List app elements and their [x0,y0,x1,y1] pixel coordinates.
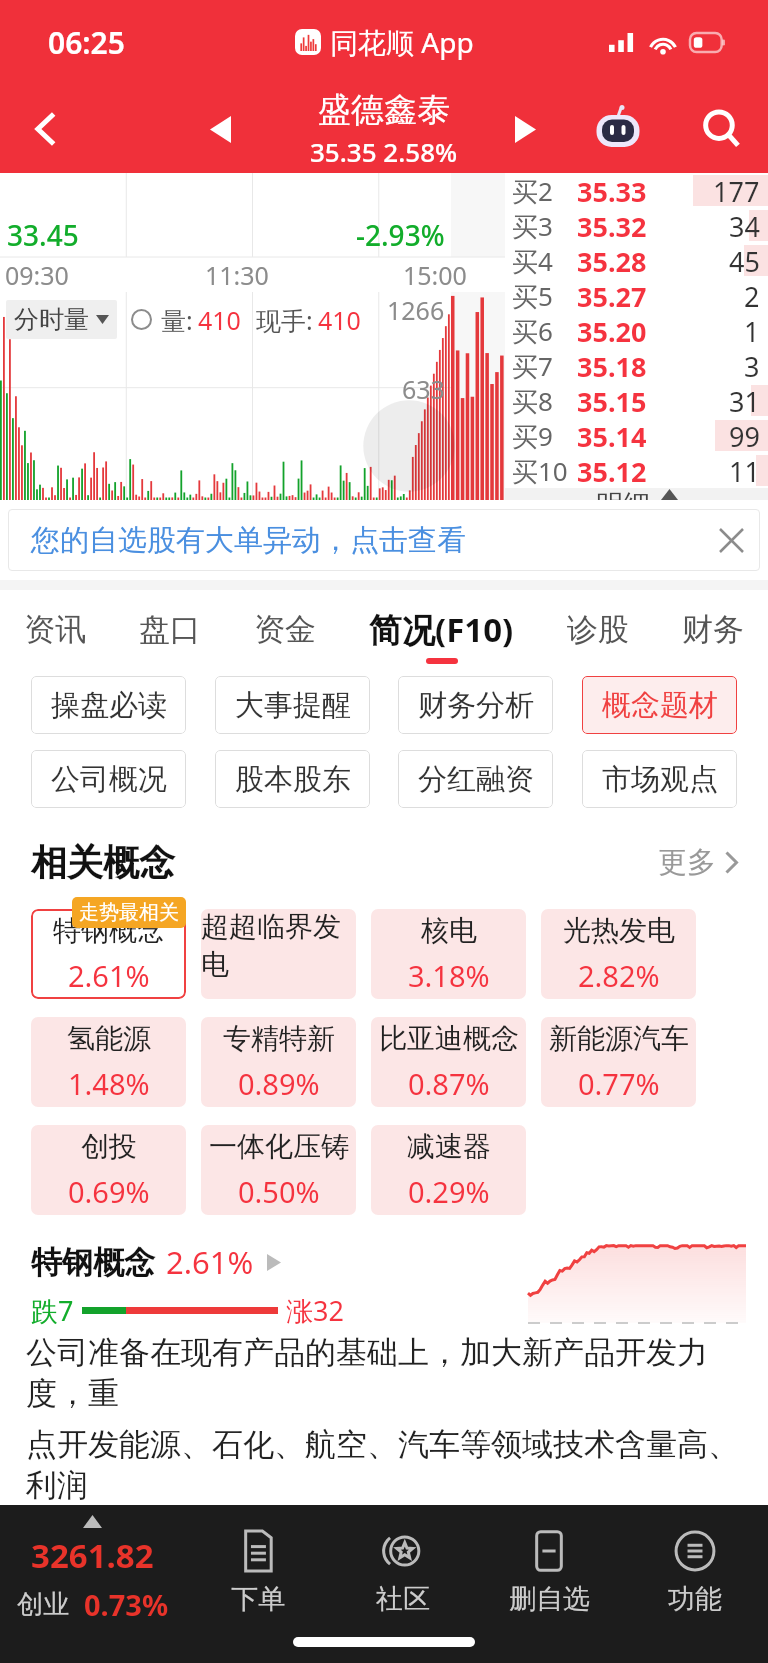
button[interactable]: 分红融资 [398,750,553,808]
staticText: 买7 [512,348,553,383]
button[interactable]: 您的自选股有大单异动，点击查看 [8,509,760,571]
button[interactable]: 氢能源 [31,1017,186,1107]
button[interactable]: 买10 [505,453,768,488]
button[interactable]: 财务分析 [398,676,553,734]
button[interactable]: Back [0,84,92,173]
staticText: 创业 [17,1588,69,1621]
staticText: 1266 [387,293,445,327]
button[interactable]: 大事提醒 [215,676,370,734]
staticText: 0.77% [578,1064,660,1103]
staticText: 0.87% [408,1064,490,1103]
button[interactable]: 市场观点 [582,750,737,808]
button[interactable]: 买7 [505,348,768,383]
staticText: 资金 [254,610,316,649]
button[interactable]: Previous stock [190,99,250,159]
staticText: 31 [729,383,760,418]
staticText: 2.82% [578,956,660,995]
button[interactable]: 创投 [31,1125,186,1215]
button[interactable]: 买3 [505,208,768,243]
button[interactable]: 资金 [254,590,316,668]
button[interactable]: 财务 [682,590,744,668]
staticText: 15:00 [403,258,467,292]
staticText: 633 [402,372,445,406]
button[interactable]: 更多 [652,838,744,887]
button[interactable]: 买4 [505,243,768,278]
staticText: 35.35 2.58% [310,134,458,169]
staticText: 0.29% [408,1172,490,1211]
button[interactable]: 诊股 [567,590,629,668]
staticText: 3261.82 [31,1533,154,1578]
staticText: 177 [713,173,760,208]
staticText: 走势最相关 [79,900,179,925]
button[interactable]: 社区 [330,1505,476,1633]
button[interactable]: 分时量 [6,300,117,339]
staticText: 1 [744,313,760,348]
button[interactable]: 公司概况 [31,750,186,808]
button[interactable]: 明细 [505,488,768,500]
staticText: 45 [729,243,760,278]
staticText: 35.20 [577,313,647,348]
staticText: 0.69% [68,1172,150,1211]
staticText: 特钢概念 [53,913,165,948]
button[interactable]: Search [676,84,768,173]
staticText: 09:30 [5,258,69,292]
staticText: 更多 [658,844,716,881]
staticText: 核电 [421,913,477,948]
staticText: 社区 [376,1582,430,1616]
button[interactable]: 资讯 [24,590,86,668]
button[interactable]: 操盘必读 [31,676,186,734]
staticText: 1.48% [68,1064,150,1103]
staticText: 35.28 [577,243,647,278]
staticText: 盛德鑫泰 [318,89,450,131]
staticText: 2 [744,278,760,313]
button[interactable]: 买2 [505,173,768,208]
staticText: 相关概念 [31,840,175,885]
button[interactable]: 比亚迪概念 [371,1017,526,1107]
button[interactable]: 减速器 [371,1125,526,1215]
staticText: 您的自选股有大单异动，点击查看 [31,522,466,559]
button[interactable]: 盘口 [139,590,201,668]
button[interactable]: 买6 [505,313,768,348]
staticText: 功能 [668,1582,722,1616]
staticText: -2.93% [356,216,445,254]
staticText: 涨32 [286,1292,344,1329]
button[interactable]: 专精特新 [201,1017,356,1107]
staticText: 35.12 [577,453,647,488]
staticText: 比亚迪概念 [379,1021,519,1056]
staticText: 99 [729,418,760,453]
staticText: 跌7 [31,1292,74,1329]
button[interactable]: 简况(F10) [369,590,514,668]
button[interactable]: 股本股东 [215,750,370,808]
staticText: 创投 [81,1129,137,1164]
button[interactable]: Next stock [495,99,555,159]
staticText: 量: [161,303,193,337]
button[interactable]: 新能源汽车 [541,1017,696,1107]
staticText: 买2 [512,173,553,208]
staticText: 明细 [596,488,650,500]
button[interactable]: 买5 [505,278,768,313]
button[interactable]: 3261.82 [0,1515,185,1624]
staticText: 简况(F10) [369,607,514,652]
staticText: 公司概况 [51,761,167,798]
button[interactable]: 特钢概念 [31,909,186,999]
button[interactable]: AI assistant [586,97,650,161]
staticText: 买4 [512,243,553,278]
button[interactable]: 超超临界发电 [201,909,356,999]
staticText: 33.45 [7,216,79,254]
staticText: 超超临界发电 [201,909,356,983]
button[interactable]: 下单 [185,1505,330,1633]
button[interactable]: 光热发电 [541,909,696,999]
staticText: 2.61% [166,1241,254,1283]
button[interactable]: Close [702,511,760,569]
button[interactable]: 功能 [622,1505,768,1633]
staticText: 资讯 [24,610,86,649]
staticText: 34 [729,208,760,243]
button[interactable]: 买9 [505,418,768,453]
button[interactable]: 买8 [505,383,768,418]
button[interactable]: 一体化压铸 [201,1125,356,1215]
button[interactable]: 核电 [371,909,526,999]
staticText: 公司准备在现有产品的基础上，加大新产品开发力度，重 [26,1333,742,1413]
button[interactable]: 概念题材 [582,676,737,734]
button[interactable]: 删自选 [476,1505,622,1633]
staticText: 专精特新 [223,1021,335,1056]
